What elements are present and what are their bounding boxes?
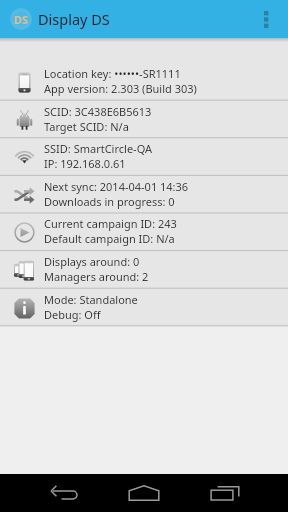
button[interactable]: SCID: 3C438E6B5613 [0,101,288,139]
staticText: Location key: ••••••-SR1111 [44,66,181,81]
staticText: Managers around: 2 [44,269,149,284]
staticText: Next sync: 2014-04-01 14:36 [44,179,189,194]
button[interactable]: Location key: ••••••-SR1111 [0,63,288,101]
button[interactable]: More options [244,0,288,38]
button[interactable]: Current campaign ID: 243 [0,213,288,251]
staticText: DS [14,12,29,27]
staticText: Default campaign ID: N/a [44,231,175,246]
button[interactable]: SSID: SmartCircle-QA [0,138,288,176]
button[interactable]: Recent apps [203,474,247,512]
button[interactable]: Displays around: 0 [0,251,288,289]
staticText: Downloads in progress: 0 [44,194,175,209]
staticText: Display DS [38,9,110,29]
staticText: Debug: Off [44,307,101,322]
button[interactable]: Back [42,474,86,512]
staticText: Displays around: 0 [44,254,140,269]
button[interactable]: Home [122,474,166,512]
staticText: Mode: Standalone [44,292,138,307]
staticText: SSID: SmartCircle-QA [44,141,153,156]
staticText: Current campaign ID: 243 [44,216,177,231]
button[interactable]: Mode: Standalone [0,289,288,327]
button[interactable]: Next sync: 2014-04-01 14:36 [0,176,288,214]
staticText: SCID: 3C438E6B5613 [44,104,152,119]
staticText: App version: 2.303 (Build 303) [44,81,197,96]
staticText: Target SCID: N/a [44,119,129,134]
staticText: IP: 192.168.0.61 [44,156,126,171]
